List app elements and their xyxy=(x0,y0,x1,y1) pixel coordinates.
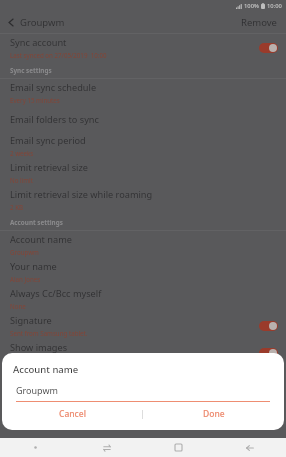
staticText: Account name xyxy=(13,363,79,376)
staticText: Account settings xyxy=(10,218,63,227)
staticText: Signature xyxy=(10,314,52,327)
button[interactable]: Toggle xyxy=(259,348,278,358)
button[interactable]: Email sync schedule xyxy=(0,79,286,106)
button[interactable]: Your name xyxy=(0,258,286,285)
staticText: Alan Jones xyxy=(10,275,41,283)
button[interactable]: Account name xyxy=(0,231,286,258)
staticText: 2 KB xyxy=(10,203,23,211)
button[interactable]: Done xyxy=(143,402,284,426)
staticText: Sent from Samsung tablet. xyxy=(10,329,88,337)
button[interactable]: Email folders to sync xyxy=(0,106,286,132)
button[interactable]: Back xyxy=(0,13,73,32)
staticText: Always Cc/Bcc myself xyxy=(10,287,102,300)
staticText: Account name xyxy=(10,233,72,246)
button[interactable]: Limit retrieval size xyxy=(0,159,286,186)
button[interactable]: Cancel xyxy=(2,402,142,426)
button[interactable]: Sync account xyxy=(0,34,286,61)
button[interactable]: Remove xyxy=(232,12,286,33)
staticText: Email sync schedule xyxy=(10,81,97,94)
staticText: Groupwm xyxy=(20,16,65,29)
button[interactable]: Limit retrieval size while roaming xyxy=(0,186,286,213)
staticText: Groupwm xyxy=(10,248,39,256)
other: Back xyxy=(8,18,14,27)
button[interactable]: Switch xyxy=(71,438,142,457)
button[interactable]: Back xyxy=(214,438,286,457)
button[interactable]: Home xyxy=(142,438,214,457)
staticText: Cancel xyxy=(59,408,86,420)
staticText: Sync settings xyxy=(10,66,52,75)
staticText: Done xyxy=(203,408,225,420)
staticText: Last synced on 27/05/2019 10:00 xyxy=(10,51,107,59)
button[interactable]: Email sync period xyxy=(0,132,286,159)
staticText: Limit retrieval size xyxy=(10,161,88,174)
button[interactable]: Show images xyxy=(0,339,286,366)
staticText: Limit retrieval size while roaming xyxy=(10,188,153,201)
staticText: Your name xyxy=(10,260,57,273)
staticText: Remove xyxy=(241,16,277,29)
button[interactable]: Signature xyxy=(0,312,286,339)
staticText: None xyxy=(10,302,26,310)
button[interactable]: Always Cc/Bcc myself xyxy=(0,285,286,312)
staticText: 100% xyxy=(244,2,259,10)
staticText: Show images xyxy=(10,341,68,354)
staticText: Email folders to sync xyxy=(10,113,99,126)
staticText: Sync account xyxy=(10,36,67,49)
staticText: No limit xyxy=(10,176,33,184)
staticText: Email sync period xyxy=(10,134,86,147)
staticText: Every 15 minutes xyxy=(10,96,60,104)
button[interactable]: Toggle xyxy=(259,43,278,53)
button[interactable]: Menu xyxy=(0,438,71,457)
staticText: 2 weeks xyxy=(10,149,34,157)
staticText: Groupwm xyxy=(16,384,58,396)
button[interactable]: Toggle xyxy=(259,321,278,331)
staticText: 10:00 xyxy=(267,2,282,10)
